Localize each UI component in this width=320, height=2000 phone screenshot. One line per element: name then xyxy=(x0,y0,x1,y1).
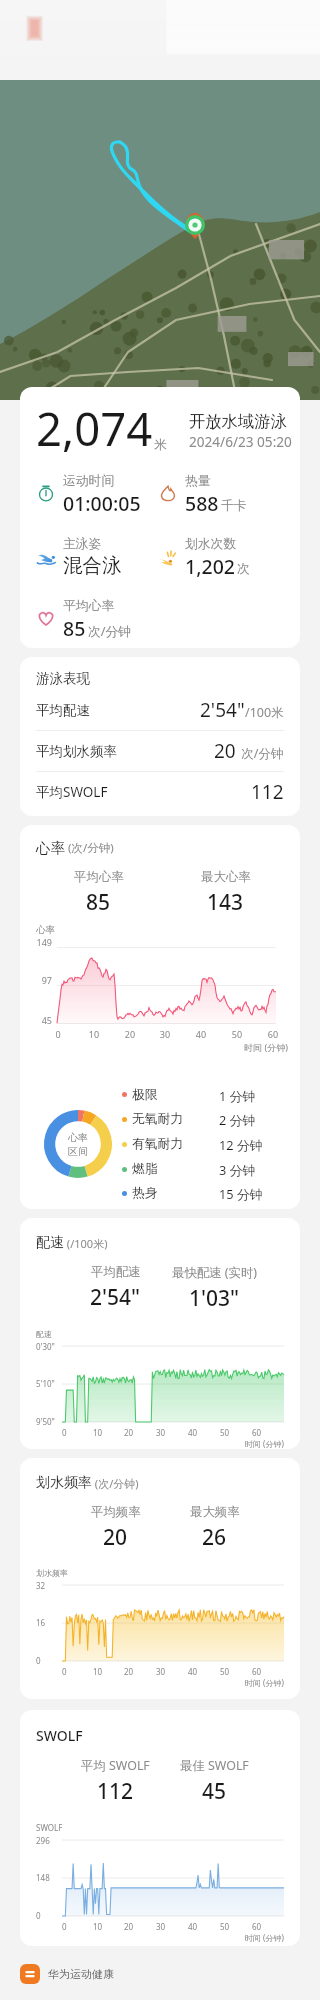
staticText: 0 xyxy=(62,1666,67,1677)
staticText: 区间 xyxy=(68,1145,88,1158)
staticText: 01:00:05 xyxy=(63,490,141,517)
staticText: 平均 SWOLF xyxy=(81,1757,150,1774)
staticText: 极限 xyxy=(132,1087,158,1103)
staticText: 2'54" xyxy=(200,697,245,723)
staticText: 32 xyxy=(36,1580,46,1591)
staticText: 华为运动健康 xyxy=(48,1967,114,1981)
staticText: 次/分钟 xyxy=(88,622,132,639)
staticText: 15 分钟 xyxy=(219,1185,263,1202)
staticText: 平均SWOLF xyxy=(36,783,108,801)
staticText: 时间 (分钟) xyxy=(245,1677,284,1688)
staticText: 平均频率 xyxy=(91,1504,141,1520)
staticText: 燃脂 xyxy=(132,1161,158,1177)
staticText: 0 xyxy=(62,1427,67,1438)
staticText: 30 xyxy=(153,1028,177,1040)
staticText: 10 xyxy=(93,1427,103,1438)
staticText: 0'30" xyxy=(36,1341,55,1352)
staticText: 最大频率 xyxy=(190,1504,240,1520)
staticText: SWOLF xyxy=(36,1726,83,1745)
staticText: 配速 xyxy=(36,1329,52,1339)
staticText: 0 xyxy=(36,1655,41,1666)
staticText: 2'54" xyxy=(90,1283,141,1312)
staticText: 次/分钟 xyxy=(238,745,284,762)
staticText: 20 xyxy=(124,1427,134,1438)
staticText: 60 xyxy=(252,1921,262,1932)
staticText: 心率 xyxy=(36,924,55,936)
staticText: 千卡 xyxy=(221,498,247,514)
staticText: 最佳 SWOLF xyxy=(180,1757,249,1774)
staticText: 0 xyxy=(62,1921,67,1932)
staticText: 26 xyxy=(202,1523,227,1552)
staticText: 10 xyxy=(93,1666,103,1677)
staticText: 时间 (分钟) xyxy=(245,1438,284,1449)
staticText: /100米 xyxy=(245,704,284,721)
staticText: 50 xyxy=(220,1427,230,1438)
staticText: 85 xyxy=(86,888,111,917)
staticText: 无氧耐力 xyxy=(132,1111,184,1127)
staticText: 热量 xyxy=(185,473,211,489)
staticText: 50 xyxy=(225,1028,249,1040)
staticText: 20 xyxy=(124,1666,134,1677)
staticText: 米 xyxy=(154,437,167,453)
staticText: 5'10" xyxy=(36,1378,55,1389)
staticText: 次 xyxy=(237,561,250,577)
staticText: 心率 xyxy=(68,1131,88,1144)
staticText: 296 xyxy=(36,1835,50,1846)
staticText: 0 xyxy=(36,1910,41,1921)
staticText: 20 xyxy=(118,1028,142,1040)
staticText: 10 xyxy=(93,1921,103,1932)
staticText: 平均配速 xyxy=(36,702,90,719)
staticText: SWOLF xyxy=(36,1822,63,1833)
staticText: 运动时间 xyxy=(63,473,115,489)
staticText: 45 xyxy=(202,1777,227,1806)
staticText: 平均心率 xyxy=(74,869,124,885)
staticText: 16 xyxy=(36,1617,46,1628)
staticText: 45 xyxy=(20,1014,52,1026)
staticText: 12 分钟 xyxy=(219,1136,263,1153)
staticText: 2 分钟 xyxy=(219,1111,256,1128)
staticText: 开放水域游泳 xyxy=(189,411,287,432)
staticText: 有氧耐力 xyxy=(132,1136,184,1152)
staticText: 配速 xyxy=(36,1234,64,1252)
staticText: 85 xyxy=(63,615,86,642)
staticText: 最大心率 xyxy=(201,869,251,885)
staticText: 1,202 xyxy=(185,553,235,580)
staticText: 112 xyxy=(251,779,284,805)
staticText: 149 xyxy=(20,936,52,948)
staticText: 20 xyxy=(214,738,236,764)
staticText: 平均配速 xyxy=(91,1264,141,1280)
staticText: 50 xyxy=(220,1921,230,1932)
staticText: 40 xyxy=(188,1427,198,1438)
staticText: 划水频率 xyxy=(36,1474,92,1492)
staticText: 时间 (分钟) xyxy=(20,1041,288,1053)
staticText: 混合泳 xyxy=(63,553,122,578)
staticText: 60 xyxy=(252,1427,262,1438)
staticText: 最快配速 (实时) xyxy=(172,1264,257,1281)
staticText: 40 xyxy=(188,1921,198,1932)
staticText: 3 分钟 xyxy=(219,1161,256,1178)
staticText: 40 xyxy=(188,1666,198,1677)
staticText: 30 xyxy=(156,1666,166,1677)
staticText: (次/分钟) xyxy=(92,1476,139,1491)
staticText: (次/分钟) xyxy=(65,840,114,856)
staticText: 2,074 xyxy=(36,397,153,459)
staticText: 热身 xyxy=(132,1185,158,1201)
staticText: (/100米) xyxy=(64,1236,108,1251)
staticText: 0 xyxy=(46,1028,70,1040)
staticText: 1 分钟 xyxy=(219,1087,256,1104)
staticText: 时间 (分钟) xyxy=(245,1932,284,1943)
staticText: 20 xyxy=(124,1921,134,1932)
staticText: 148 xyxy=(36,1872,50,1883)
staticText: 心率 xyxy=(36,839,65,857)
staticText: 40 xyxy=(189,1028,213,1040)
staticText: 划水频率 xyxy=(36,1568,68,1578)
staticText: 主泳姿 xyxy=(63,536,102,552)
staticText: 30 xyxy=(156,1921,166,1932)
staticText: 游泳表现 xyxy=(36,670,90,687)
staticText: 10 xyxy=(82,1028,106,1040)
staticText: 平均心率 xyxy=(63,598,115,614)
staticText: 划水次数 xyxy=(185,536,237,552)
staticText: 1'03" xyxy=(189,1284,240,1313)
staticText: 30 xyxy=(156,1427,166,1438)
staticText: 60 xyxy=(252,1666,262,1677)
